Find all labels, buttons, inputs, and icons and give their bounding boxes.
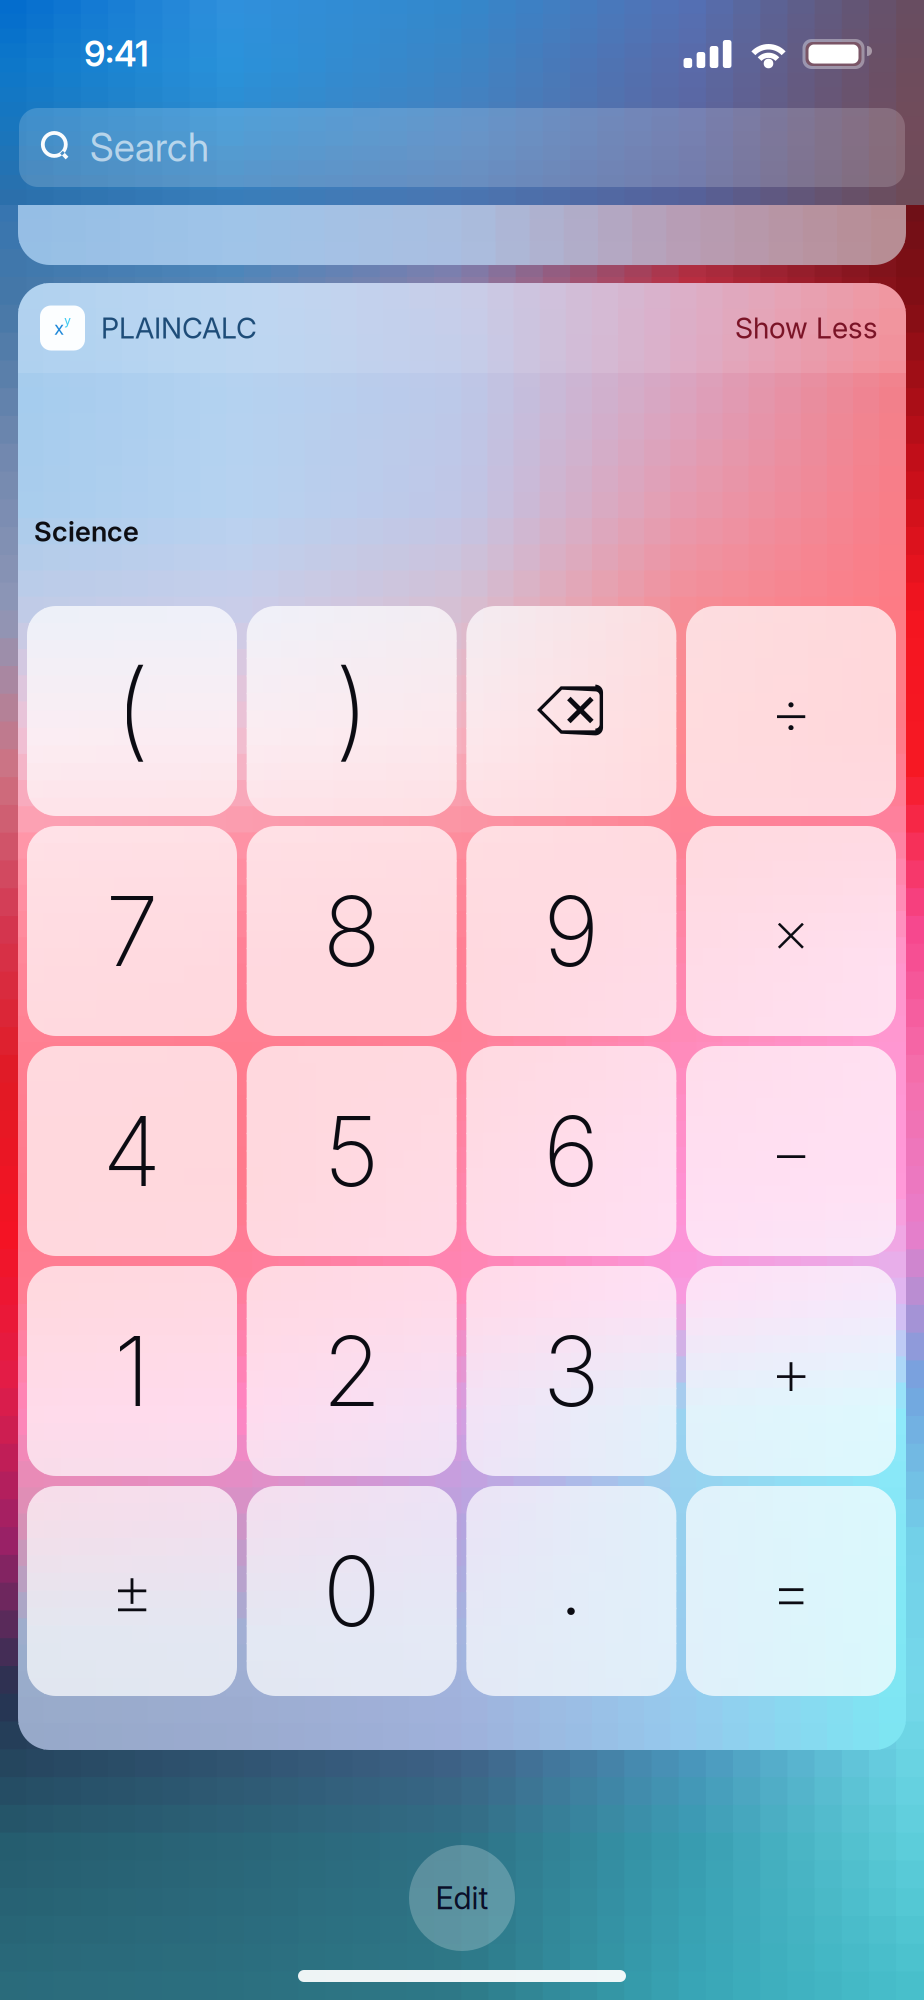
button[interactable]: ± — [27, 1486, 237, 1696]
button[interactable]: Edit — [409, 1845, 515, 1951]
button[interactable]: 3 — [466, 1266, 676, 1476]
button[interactable]: 9 — [466, 826, 676, 1036]
staticText: 7 — [105, 873, 158, 989]
staticText: Show Less — [735, 311, 878, 345]
staticText: 4 — [102, 1093, 161, 1209]
button[interactable]: ( — [27, 606, 237, 816]
staticText: PLAINCALC — [101, 311, 257, 345]
staticText: . — [558, 1522, 585, 1638]
button[interactable]: . — [466, 1486, 676, 1696]
staticText: + — [769, 1331, 812, 1411]
staticText: Search — [90, 124, 209, 171]
staticText: = — [769, 1551, 812, 1631]
button[interactable]: × — [686, 826, 896, 1036]
button[interactable]: Show Less — [735, 283, 906, 373]
button[interactable]: ÷ — [686, 606, 896, 816]
button[interactable]: 4 — [27, 1046, 237, 1256]
staticText: 8 — [323, 873, 381, 989]
button[interactable]: 8 — [247, 826, 457, 1036]
staticText: 1 — [113, 1313, 150, 1429]
button[interactable]: ) — [247, 606, 457, 816]
button[interactable]: 6 — [466, 1046, 676, 1256]
staticText: ± — [110, 1551, 153, 1631]
button[interactable]: + — [686, 1266, 896, 1476]
staticText: 6 — [543, 1093, 599, 1209]
staticText: 9 — [543, 873, 599, 989]
staticText: y — [64, 312, 71, 328]
staticText: ÷ — [769, 671, 812, 751]
staticText: x — [54, 317, 64, 339]
staticText: ( — [114, 643, 149, 773]
staticText: 5 — [324, 1093, 380, 1209]
button[interactable]: 7 — [27, 826, 237, 1036]
button[interactable]: = — [686, 1486, 896, 1696]
staticText: 9:41 — [84, 33, 149, 75]
button[interactable]: Search — [19, 108, 905, 187]
button[interactable]: x — [18, 283, 257, 373]
button[interactable]: 5 — [247, 1046, 457, 1256]
staticText: ) — [334, 643, 369, 773]
staticText: × — [771, 895, 810, 967]
staticText: Edit — [435, 1879, 488, 1916]
button[interactable]: 1 — [27, 1266, 237, 1476]
staticText: 0 — [323, 1533, 381, 1649]
button[interactable] — [466, 606, 676, 816]
staticText: 2 — [322, 1313, 381, 1429]
staticText: Science — [34, 515, 139, 548]
staticText: − — [769, 1111, 812, 1191]
staticText: 3 — [543, 1313, 600, 1429]
button[interactable]: − — [686, 1046, 896, 1256]
button[interactable]: 2 — [247, 1266, 457, 1476]
button[interactable]: 0 — [247, 1486, 457, 1696]
